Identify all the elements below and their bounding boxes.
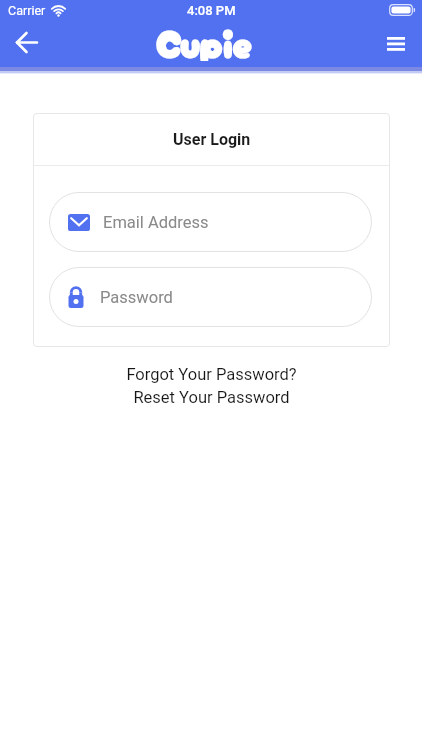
staticText: User Login — [173, 130, 251, 149]
button[interactable] — [12, 27, 42, 57]
staticText: Forgot Your Password? Reset Your Passwor… — [126, 365, 297, 407]
staticText: Carrier — [8, 3, 46, 18]
staticText: 4:08 PM — [187, 3, 236, 18]
button[interactable]: Cupie — [156, 14, 252, 61]
button[interactable]: Email Address — [49, 192, 372, 252]
staticText: Email Address — [103, 213, 209, 232]
button[interactable]: Password — [49, 267, 372, 327]
staticText: Password — [100, 288, 173, 307]
button[interactable] — [383, 31, 409, 57]
staticText: Cupie — [156, 14, 252, 61]
button[interactable]: Forgot Your Password? Reset Your Passwor… — [0, 365, 422, 407]
